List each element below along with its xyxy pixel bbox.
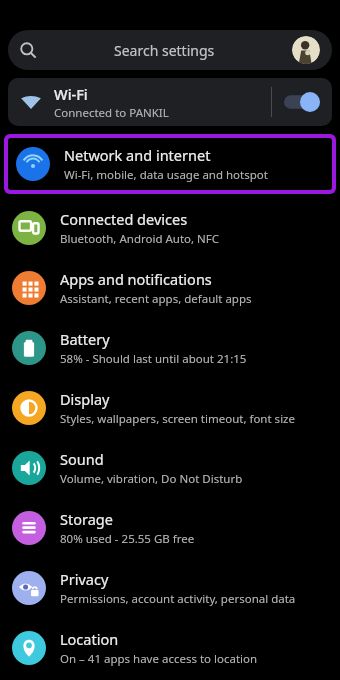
staticText: Wi-Fi, mobile, data usage and hotspot xyxy=(64,167,268,183)
button[interactable]: Sound xyxy=(0,442,340,494)
staticText: Location xyxy=(60,629,119,649)
staticText: Wi-Fi xyxy=(54,84,88,104)
staticText: Network and internet xyxy=(64,145,211,165)
staticText: Display xyxy=(60,389,110,409)
button[interactable]: Apps and notifications xyxy=(0,262,340,314)
button[interactable]: Wi-Fi xyxy=(8,78,332,126)
staticText: On – 41 apps have access to location xyxy=(60,651,258,667)
staticText: Volume, vibration, Do Not Disturb xyxy=(60,471,243,487)
staticText: Storage xyxy=(60,509,113,529)
button[interactable]: Display xyxy=(0,382,340,434)
staticText: 80% used - 25.55 GB free xyxy=(60,531,195,547)
staticText: Styles, wallpapers, screen timeout, font… xyxy=(60,411,295,427)
other: Search xyxy=(20,42,37,59)
staticText: 58% - Should last until about 21:15 xyxy=(60,351,247,367)
button[interactable]: Account xyxy=(292,36,320,64)
button[interactable]: Storage xyxy=(0,502,340,554)
button[interactable]: Search xyxy=(8,30,332,70)
staticText: Apps and notifications xyxy=(60,269,212,289)
staticText: Battery xyxy=(60,329,110,349)
staticText: Permissions, account activity, personal … xyxy=(60,591,296,607)
staticText: Sound xyxy=(60,449,104,469)
staticText: Bluetooth, Android Auto, NFC xyxy=(60,231,220,247)
staticText: Assistant, recent apps, default apps xyxy=(60,291,252,307)
button[interactable]: Connected devices xyxy=(0,202,340,254)
button[interactable]: Wi-Fi toggle xyxy=(284,92,320,112)
staticText: Search settings xyxy=(114,41,215,60)
button[interactable]: Battery xyxy=(0,322,340,374)
staticText: Connected devices xyxy=(60,209,188,229)
button[interactable]: Location xyxy=(0,622,340,674)
staticText: Privacy xyxy=(60,569,109,589)
button[interactable]: Privacy xyxy=(0,562,340,614)
button[interactable]: Network and internet xyxy=(8,138,332,190)
staticText: Connected to PANKIL xyxy=(54,105,169,121)
